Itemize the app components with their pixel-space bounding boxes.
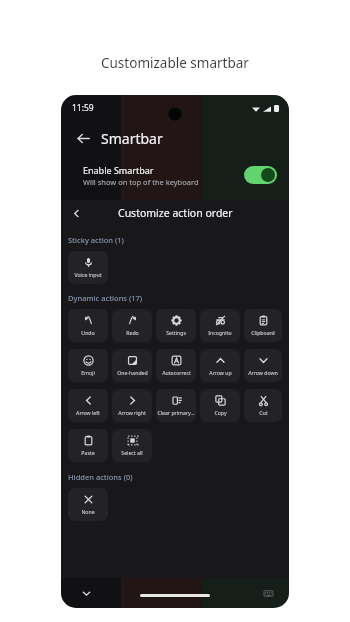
staticText: Settings — [166, 329, 186, 336]
button[interactable]: Select all — [112, 429, 152, 462]
button[interactable]: Back — [66, 203, 86, 223]
button[interactable]: Arrow right — [112, 389, 152, 422]
staticText: None — [81, 508, 95, 515]
staticText: Clipboard — [251, 329, 275, 336]
staticText: Cut — [259, 409, 268, 416]
staticText: Sticky action (1) — [68, 235, 124, 245]
button[interactable]: Arrow up — [200, 349, 240, 382]
button[interactable]: Redo — [112, 309, 152, 342]
staticText: Dynamic actions (17) — [68, 293, 143, 303]
button[interactable]: Autocorrect — [156, 349, 196, 382]
staticText: Arrow up — [209, 369, 232, 376]
button[interactable]: None — [68, 488, 108, 521]
button[interactable]: Cut — [244, 389, 282, 422]
button[interactable]: Clipboard — [244, 309, 282, 342]
staticText: Arrow down — [248, 369, 278, 376]
staticText: Smartbar — [101, 129, 163, 148]
button[interactable]: Back — [71, 126, 95, 150]
staticText: Customizable smartbar — [101, 54, 249, 72]
button[interactable]: Switch keyboard — [261, 586, 275, 600]
staticText: Enable Smartbar — [83, 164, 154, 176]
staticText: Autocorrect — [162, 369, 191, 376]
button[interactable]: Undo — [68, 309, 108, 342]
staticText: Arrow left — [76, 409, 100, 416]
button[interactable]: Copy — [200, 389, 240, 422]
staticText: Hidden actions (0) — [68, 472, 133, 482]
staticText: Arrow right — [118, 409, 146, 416]
staticText: Paste — [81, 449, 95, 456]
button[interactable]: Enable Smartbar — [61, 155, 289, 195]
button[interactable]: Emoji — [68, 349, 108, 382]
staticText: One-handed — [117, 369, 148, 376]
button[interactable]: Voice input — [68, 251, 108, 284]
button[interactable]: One-handed — [112, 349, 152, 382]
button[interactable]: Incognito — [200, 309, 240, 342]
staticText: Voice input — [74, 271, 102, 278]
button[interactable]: Arrow left — [68, 389, 108, 422]
button[interactable]: Settings — [156, 309, 196, 342]
button[interactable]: Paste — [68, 429, 108, 462]
button[interactable]: Arrow down — [244, 349, 282, 382]
staticText: Incognito — [208, 329, 232, 336]
staticText: Will show on top of the keyboard — [83, 177, 199, 187]
staticText: Select all — [121, 449, 143, 456]
staticText: Customize action order — [118, 206, 233, 220]
staticText: Undo — [81, 329, 95, 336]
staticText: 11:59 — [72, 102, 94, 114]
staticText: Emoji — [81, 369, 95, 376]
staticText: Copy — [214, 409, 227, 416]
staticText: Clear primary… — [157, 409, 195, 416]
staticText: Redo — [126, 329, 139, 336]
button[interactable]: Hide keyboard — [77, 584, 95, 602]
button[interactable]: Clear primary… — [156, 389, 196, 422]
